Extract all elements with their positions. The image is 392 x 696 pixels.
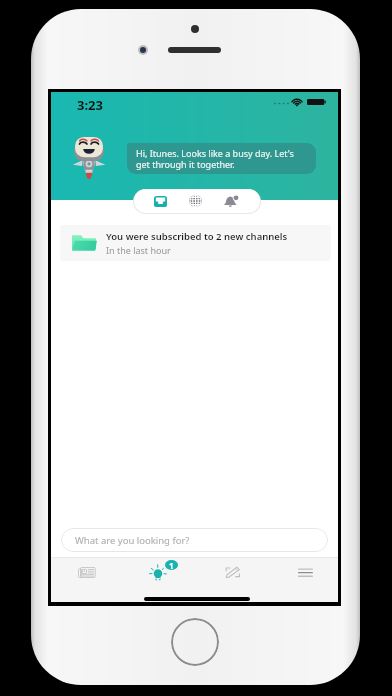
button[interactable]: Ideas, 1 new — [142, 558, 176, 586]
staticText: What are you looking for? — [75, 534, 190, 547]
button[interactable]: Inbox — [144, 189, 176, 213]
staticText: 1 — [169, 560, 174, 570]
button[interactable]: Compose — [216, 558, 250, 586]
staticText: You were subscribed to 2 new channels — [106, 230, 288, 243]
button[interactable]: What are you looking for? — [61, 528, 328, 552]
button[interactable]: News — [70, 558, 104, 586]
button[interactable]: Discover — [179, 189, 211, 213]
staticText: In the last hour — [106, 244, 171, 256]
button[interactable]: 1 new idea — [165, 560, 178, 570]
staticText: 3:23 — [77, 96, 103, 114]
button[interactable]: Notifications — [215, 189, 247, 213]
staticText: Hi, Itunes. Looks like a busy day. Let's… — [136, 147, 310, 171]
button[interactable]: You were subscribed to 2 new channels — [60, 225, 331, 261]
button[interactable]: Menu — [288, 558, 322, 586]
